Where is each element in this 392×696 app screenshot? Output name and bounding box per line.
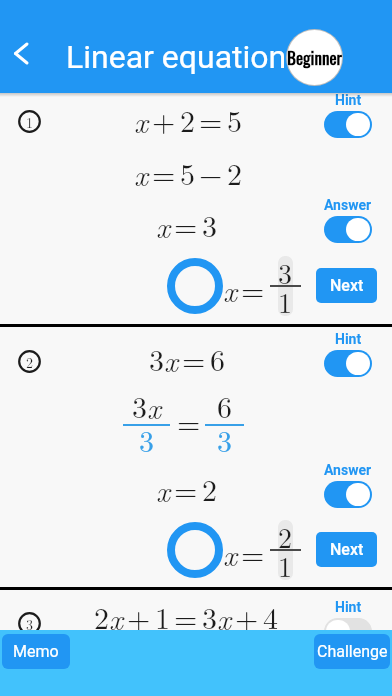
button[interactable]: Answer circle <box>167 258 223 314</box>
staticText: Memo <box>13 642 59 661</box>
staticText: − <box>199 151 223 194</box>
staticText: 2 <box>202 467 217 510</box>
staticText: = <box>182 337 206 380</box>
staticText: 2 <box>180 98 195 141</box>
staticText: Next <box>330 276 364 295</box>
staticText: 3 <box>202 595 217 638</box>
staticText: 3 <box>217 418 232 461</box>
button[interactable]: Hint <box>324 92 372 138</box>
button[interactable]: Memo <box>2 634 70 669</box>
staticText: = <box>199 98 223 141</box>
staticText: x <box>156 204 170 246</box>
staticText: x <box>223 532 237 574</box>
staticText: Hint <box>335 599 362 615</box>
staticText: Hint <box>335 331 362 347</box>
staticText: 3 <box>278 252 293 292</box>
staticText: 3 <box>132 384 147 427</box>
staticText: 1 <box>278 545 293 585</box>
button[interactable]: Next <box>316 268 377 303</box>
staticText: = <box>177 400 201 443</box>
staticText: + <box>152 98 176 141</box>
staticText: 2 <box>278 516 293 556</box>
staticText: 3 <box>26 614 33 634</box>
staticText: Answer <box>324 462 372 478</box>
staticText: Challenge <box>317 642 388 661</box>
staticText: 1 <box>278 281 293 321</box>
staticText: 2 <box>26 352 33 372</box>
staticText: 5 <box>227 98 242 141</box>
staticText: x <box>164 338 178 380</box>
staticText: x <box>147 385 161 427</box>
staticText: Beginner <box>287 45 342 70</box>
staticText: = <box>241 531 265 574</box>
button[interactable]: Next <box>316 532 377 567</box>
button[interactable]: Back <box>3 35 39 71</box>
staticText: 1 <box>155 595 170 638</box>
staticText: 3 <box>202 203 217 246</box>
staticText: 3 <box>149 337 164 380</box>
button[interactable]: Answer <box>324 197 372 243</box>
staticText: Hint <box>335 92 362 108</box>
staticText: + <box>235 595 259 638</box>
staticText: = <box>241 267 265 310</box>
staticText: 6 <box>217 384 232 427</box>
staticText: = <box>174 595 198 638</box>
staticText: Next <box>330 540 364 559</box>
staticText: x <box>217 596 231 638</box>
staticText: 4 <box>263 595 278 638</box>
staticText: x <box>156 468 170 510</box>
staticText: = <box>174 203 198 246</box>
staticText: x <box>223 268 237 310</box>
staticText: = <box>174 467 198 510</box>
staticText: 5 <box>180 151 195 194</box>
staticText: 1 <box>26 112 33 132</box>
staticText: Linear equation <box>66 38 287 76</box>
staticText: 2 <box>94 595 109 638</box>
staticText: x <box>134 99 148 141</box>
button[interactable]: Answer <box>324 462 372 508</box>
button[interactable]: Challenge <box>314 634 390 669</box>
button[interactable]: Answer circle <box>167 522 223 578</box>
staticText: 6 <box>210 337 225 380</box>
button[interactable]: Beginner <box>287 30 342 85</box>
staticText: x <box>109 596 123 638</box>
staticText: + <box>127 595 151 638</box>
staticText: 2 <box>227 151 242 194</box>
staticText: = <box>152 151 176 194</box>
staticText: x <box>134 152 148 194</box>
button[interactable]: Hint <box>324 599 372 645</box>
button[interactable]: Hint <box>324 331 372 377</box>
staticText: 3 <box>139 418 154 461</box>
staticText: Answer <box>324 197 372 213</box>
